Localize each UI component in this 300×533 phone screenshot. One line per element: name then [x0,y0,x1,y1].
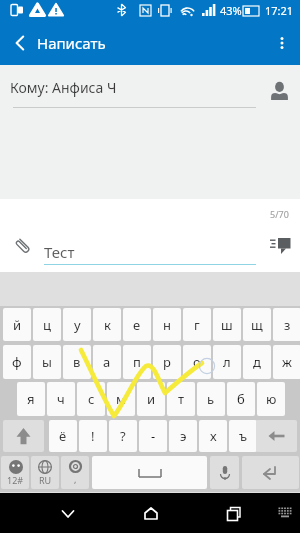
staticText: э [180,427,187,445]
button[interactable]: Symbols [1,456,29,489]
staticText: ш [221,316,233,334]
staticText: ъ [239,427,248,445]
button[interactable]: - [139,420,167,452]
staticText: ж [282,353,292,371]
button[interactable]: л [213,345,241,379]
staticText: у [74,316,81,334]
button[interactable]: б [227,382,255,416]
button[interactable]: х [199,420,227,452]
button[interactable]: ю [257,382,285,416]
staticText: е [133,316,141,334]
button[interactable]: е [123,308,151,341]
staticText: ь [207,390,215,408]
button[interactable]: More options [264,21,300,65]
button[interactable]: у [63,308,91,341]
staticText: о [193,353,201,371]
staticText: п [133,353,141,371]
staticText: с [88,390,95,408]
staticText: RU [39,474,52,486]
staticText: 12# [7,474,24,486]
button[interactable]: Recents [216,496,251,531]
button[interactable]: в [63,345,91,379]
button[interactable]: и [137,382,165,416]
staticText: г [194,316,200,334]
staticText: ё [59,427,67,445]
button[interactable]: ц [33,308,61,341]
staticText: р [163,353,171,371]
button[interactable]: а [93,345,121,379]
button[interactable]: Attach [8,231,38,261]
button[interactable]: ч [47,382,75,416]
staticText: Кому: Анфиса Ч [10,78,117,97]
button[interactable]: д [243,345,271,379]
button[interactable]: я [17,382,45,416]
staticText: - [151,427,156,445]
button[interactable]: Back [0,21,40,65]
staticText: ? [120,427,126,445]
button[interactable]: ш [213,308,241,341]
button[interactable]: щ [243,308,271,341]
button[interactable]: ё [49,420,77,452]
staticText: м [116,390,126,408]
button[interactable]: Choose contact [264,75,294,105]
button[interactable]: н [153,308,181,341]
staticText: 5/70 [270,208,289,220]
button[interactable]: ф [3,345,31,379]
button[interactable]: к [93,308,121,341]
button[interactable]: Language [31,456,59,489]
button[interactable]: Back [50,496,85,531]
staticText: и [147,390,156,408]
staticText: 43% [220,3,242,18]
staticText: ы [42,353,52,371]
staticText: в [73,353,81,371]
button[interactable]: Shift [3,420,44,452]
staticText: Тест [44,242,75,262]
button[interactable]: т [167,382,195,416]
button[interactable]: ! [79,420,107,452]
staticText: а [103,353,111,371]
button[interactable]: э [169,420,197,452]
button[interactable]: с [77,382,105,416]
staticText: т [178,390,185,408]
button[interactable]: г [183,308,211,341]
button[interactable]: о [183,345,211,379]
staticText: ф [12,353,22,371]
button[interactable]: з [273,308,300,341]
staticText: я [27,390,35,408]
staticText: к [104,316,111,334]
staticText: з [284,316,291,334]
button[interactable]: Space [92,456,207,489]
button[interactable]: м [107,382,135,416]
staticText: л [223,353,231,371]
button[interactable]: Voice input [210,456,239,489]
button[interactable]: Settings [61,456,89,489]
button[interactable]: р [153,345,181,379]
button[interactable]: п [123,345,151,379]
button[interactable]: Send [264,231,294,261]
staticText: ч [57,390,65,408]
button[interactable]: й [3,308,31,341]
button[interactable]: ? [109,420,137,452]
staticText: ! [91,427,95,445]
button[interactable]: ъ [229,420,257,452]
staticText: ю [266,390,277,408]
staticText: н [163,316,171,334]
button[interactable]: ы [33,345,61,379]
button[interactable]: ж [273,345,300,379]
staticText: , [74,473,77,485]
staticText: ц [43,316,51,334]
button[interactable]: Enter [242,456,299,489]
staticText: х [210,427,217,445]
button[interactable]: Backspace [256,420,297,452]
button[interactable]: ь [197,382,225,416]
staticText: 17:21 [265,3,294,18]
button[interactable]: Home [133,496,168,531]
staticText: Написать [37,33,106,53]
button[interactable]: Hide keyboard [270,498,300,528]
staticText: д [253,353,261,371]
staticText: б [237,390,245,408]
staticText: щ [251,316,263,334]
staticText: й [13,316,22,334]
